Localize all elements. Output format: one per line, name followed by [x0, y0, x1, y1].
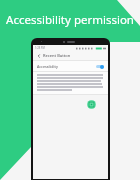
staticText: Accessibility permission — [0, 12, 140, 28]
button[interactable]: Accessibility toggle — [96, 64, 104, 69]
button[interactable]: Accessibility — [33, 61, 108, 71]
staticText: 1:28 PM — [35, 46, 45, 50]
button[interactable]: Accessibility service — [87, 100, 96, 109]
button[interactable]: Back — [33, 51, 108, 60]
staticText: Accessibility — [37, 64, 58, 69]
button[interactable]: Back — [36, 53, 41, 58]
staticText: Recent Button — [43, 53, 71, 58]
